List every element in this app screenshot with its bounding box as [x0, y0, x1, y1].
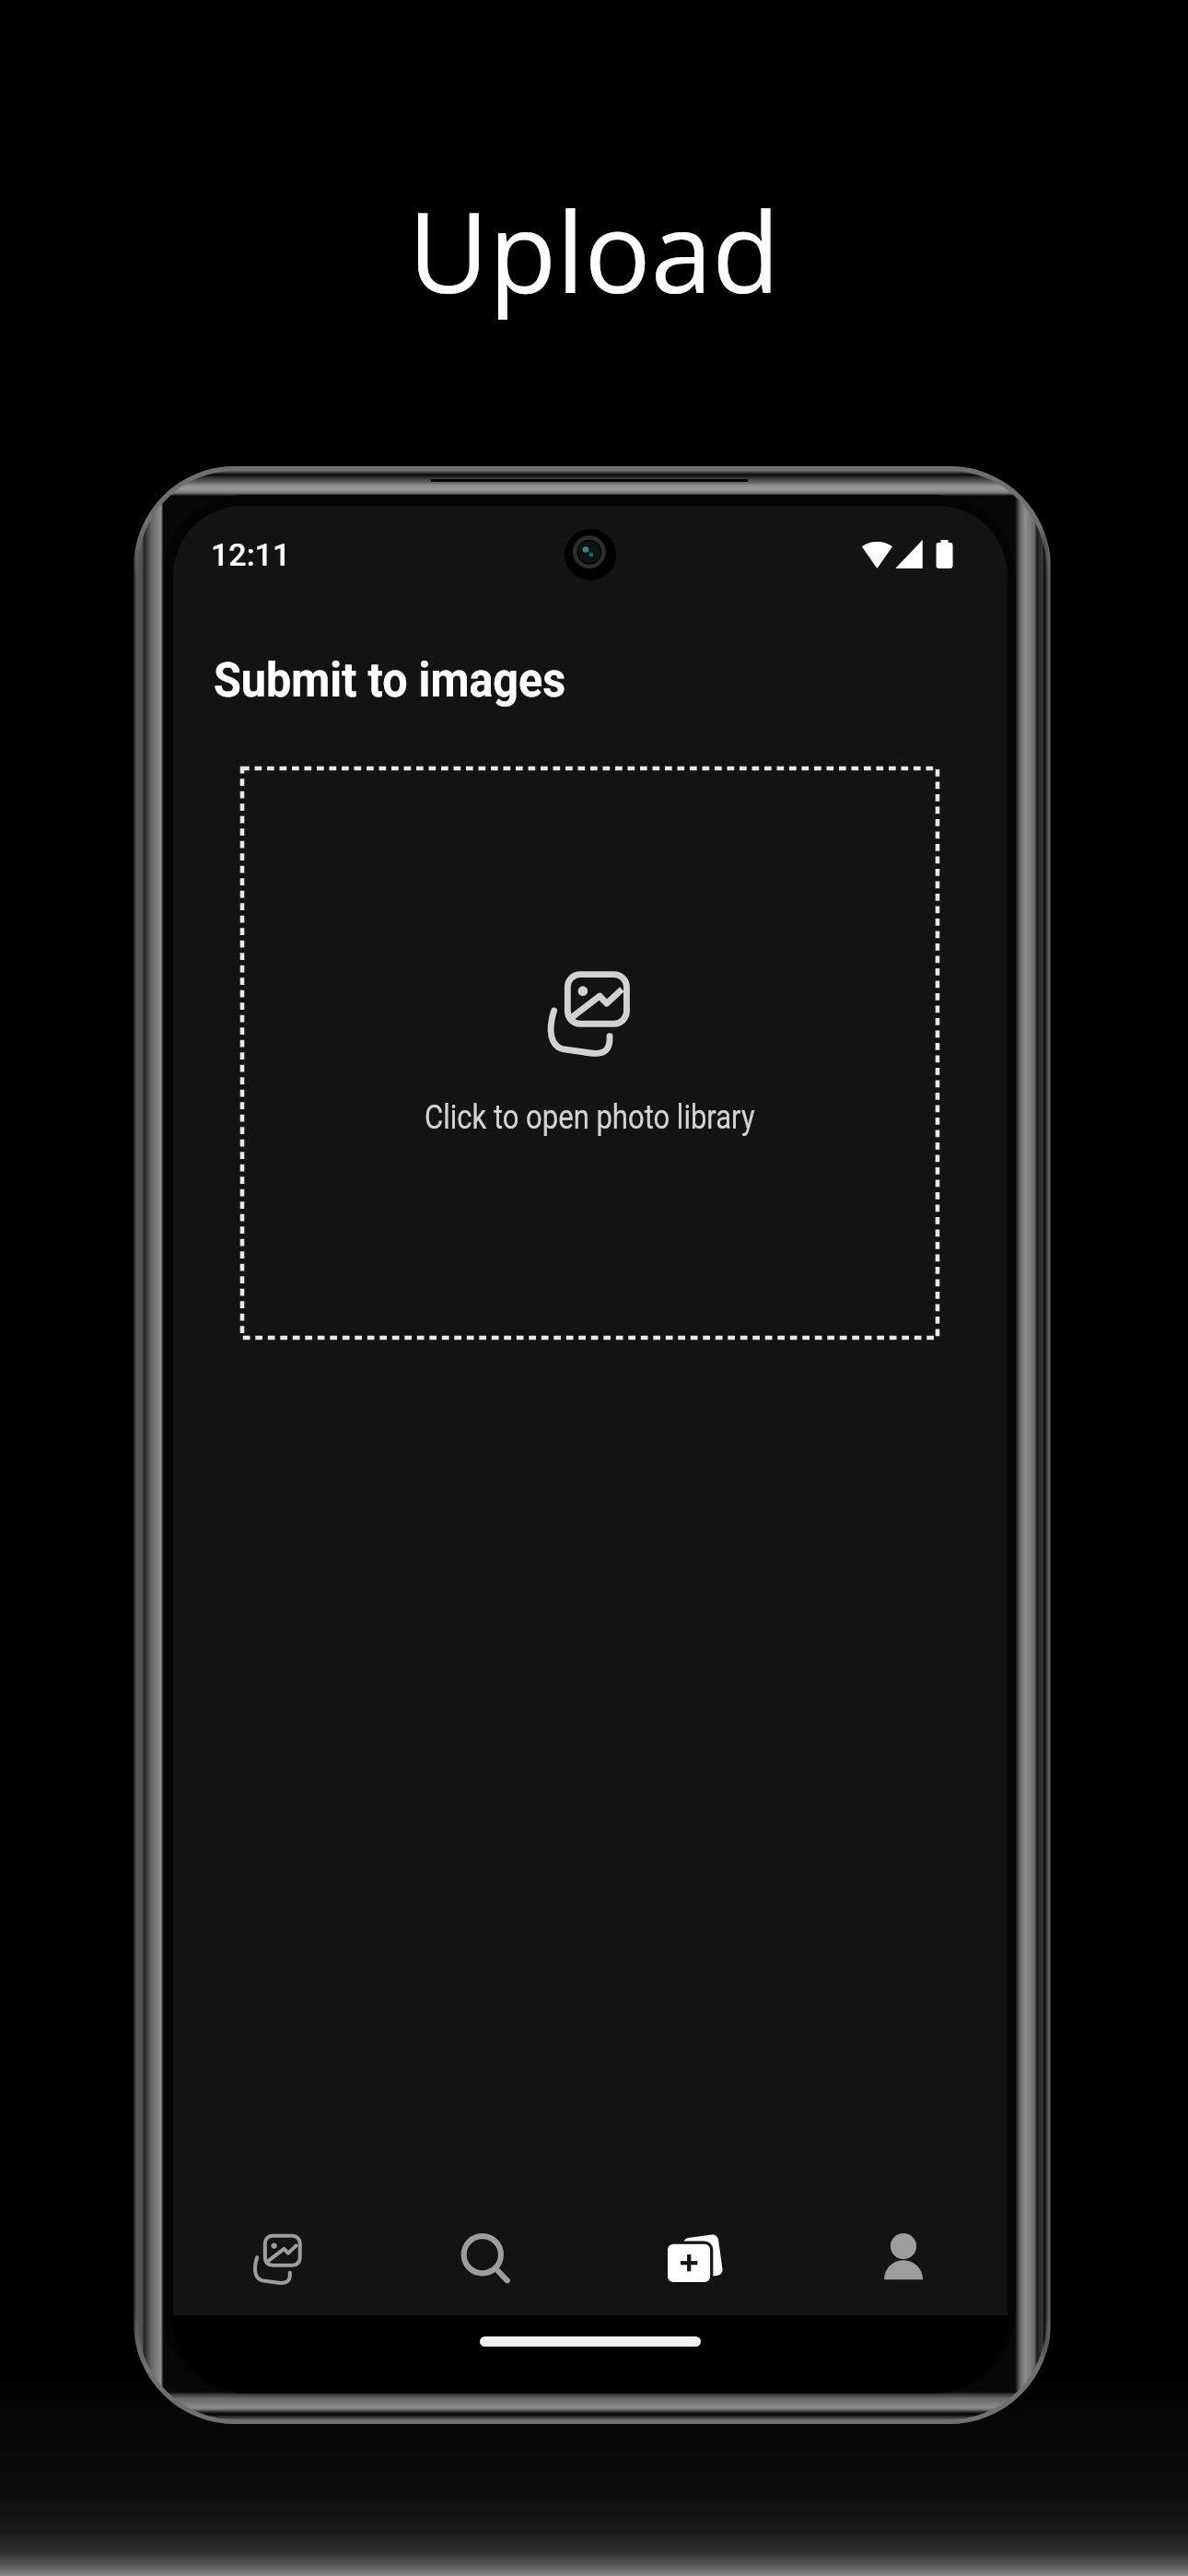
button[interactable]: Upload	[589, 2201, 798, 2315]
button[interactable]: Profile	[798, 2201, 1007, 2315]
staticText: 12:11	[211, 536, 291, 573]
button[interactable]: Photos	[173, 2201, 381, 2315]
button[interactable]: Search	[381, 2201, 589, 2315]
staticText: Click to open photo library	[425, 1097, 755, 1137]
button[interactable]: Click to open photo library	[242, 768, 938, 1338]
staticText: Submit to images	[214, 653, 566, 708]
staticText: Upload	[408, 175, 780, 325]
